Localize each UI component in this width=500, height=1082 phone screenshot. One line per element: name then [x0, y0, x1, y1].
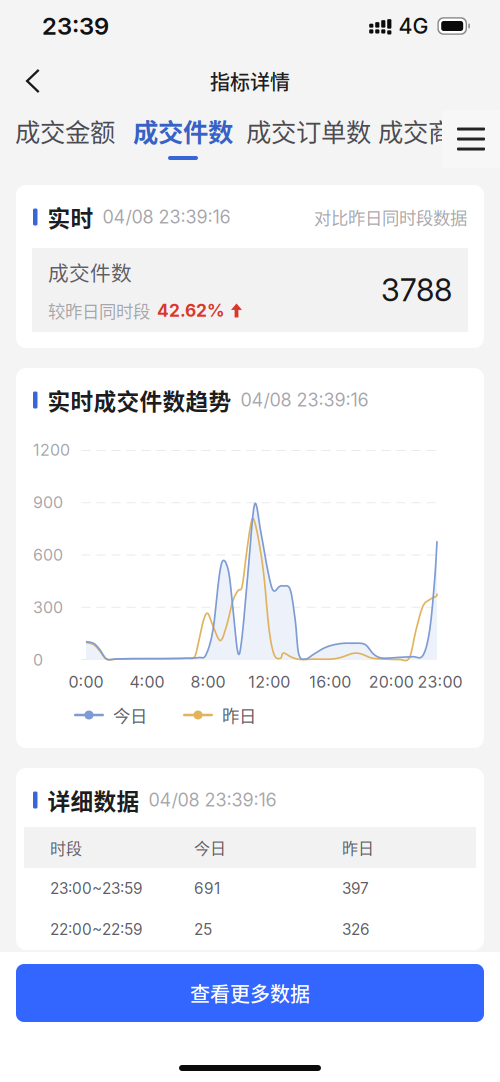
staticText: 04/08 23:39:16: [240, 389, 368, 411]
staticText: 300: [33, 598, 63, 617]
staticText: 今日: [113, 702, 147, 728]
staticText: 12:00: [248, 672, 290, 692]
staticText: 成交商品数: [378, 112, 500, 149]
staticText: 3788: [381, 271, 452, 308]
staticText: 成交订单数: [246, 112, 371, 149]
staticText: 42.62%: [157, 300, 225, 321]
button[interactable]: 返回: [10, 58, 56, 104]
staticText: 对比昨日同时段数据: [314, 204, 467, 230]
staticText: 600: [33, 545, 63, 565]
staticText: 23:39: [42, 11, 109, 40]
staticText: 详细数据: [47, 784, 139, 816]
staticText: 昨日: [222, 702, 256, 728]
staticText: 0:00: [68, 672, 103, 692]
staticText: 成交件数: [48, 257, 132, 287]
staticText: 时段: [50, 836, 82, 859]
button[interactable]: 成交商品数: [378, 110, 500, 168]
button[interactable]: 成交件数: [133, 110, 233, 168]
staticText: 查看更多数据: [190, 978, 310, 1007]
button[interactable]: 查看更多数据: [16, 964, 484, 1022]
staticText: 22:00~22:59: [50, 920, 143, 939]
staticText: 4:00: [129, 672, 164, 692]
staticText: 成交金额: [15, 112, 115, 149]
staticText: 25: [194, 920, 212, 939]
staticText: 16:00: [309, 672, 351, 692]
staticText: 较昨日同时段: [48, 298, 150, 323]
staticText: 900: [33, 493, 63, 512]
staticText: 8:00: [191, 672, 226, 692]
staticText: 326: [342, 920, 370, 939]
staticText: 691: [194, 879, 220, 898]
staticText: 实时: [47, 201, 93, 233]
staticText: 今日: [194, 836, 226, 859]
staticText: 1200: [33, 440, 70, 460]
button[interactable]: 成交金额: [15, 110, 115, 168]
staticText: 实时成交件数趋势: [47, 384, 231, 416]
staticText: 04/08 23:39:16: [148, 789, 276, 811]
staticText: 23:00: [417, 672, 462, 692]
staticText: 指标详情: [210, 66, 290, 95]
staticText: 23:00~23:59: [50, 879, 143, 898]
button[interactable]: 成交订单数: [246, 110, 371, 168]
staticText: 4G: [398, 13, 428, 39]
staticText: 成交件数: [133, 112, 233, 149]
button[interactable]: 更多指标: [442, 110, 500, 168]
staticText: 昨日: [342, 836, 374, 859]
staticText: 04/08 23:39:16: [102, 206, 230, 228]
staticText: 0: [33, 650, 43, 670]
staticText: 20:00: [369, 672, 414, 692]
staticText: 397: [342, 879, 369, 898]
